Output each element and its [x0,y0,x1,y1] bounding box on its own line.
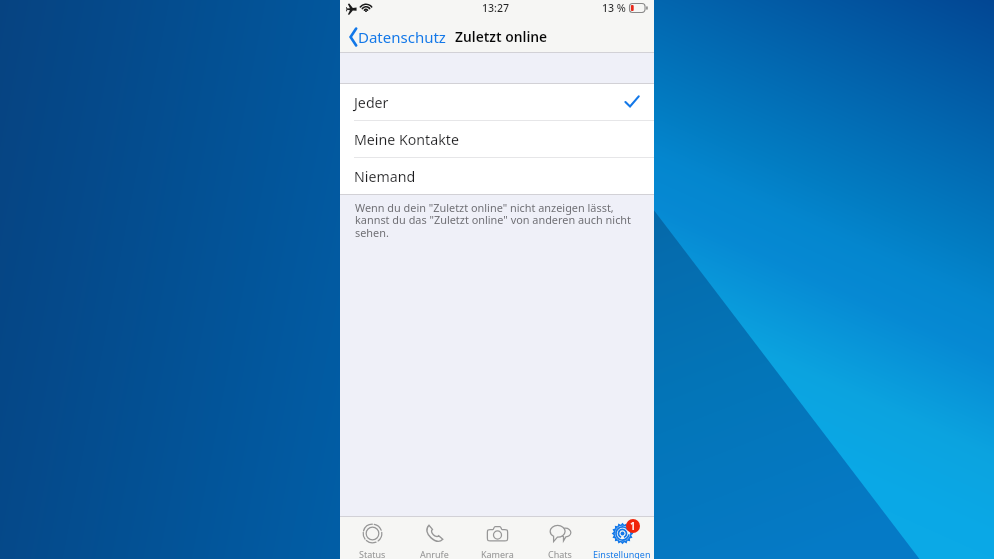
staticText: 13 % [602,1,626,15]
staticText: Einstellungen [593,548,651,559]
button[interactable]: 1 [591,517,653,559]
staticText: Status [359,548,386,559]
button[interactable]: Anrufe [403,517,465,559]
staticText: Chats [548,548,572,559]
staticText: Meine Kontakte [354,130,459,149]
button[interactable]: Meine Kontakte [340,121,654,157]
staticText: Niemand [354,167,416,186]
staticText: Wenn du dein "Zuletzt online" nicht anze… [355,200,643,241]
button[interactable]: Status [341,517,403,559]
button[interactable]: Datenschutz [345,27,446,47]
button[interactable]: Niemand [340,158,654,194]
staticText: Kamera [481,548,514,559]
staticText: 1 [630,519,636,533]
staticText: Jeder [354,93,389,112]
button[interactable]: Jeder [340,84,654,120]
button[interactable]: Kamera [466,517,528,559]
staticText: Zuletzt online [455,27,548,46]
staticText: 13:27 [482,1,510,15]
button[interactable]: Chats [529,517,591,559]
staticText: Anrufe [420,548,449,559]
staticText: Datenschutz [358,27,446,47]
